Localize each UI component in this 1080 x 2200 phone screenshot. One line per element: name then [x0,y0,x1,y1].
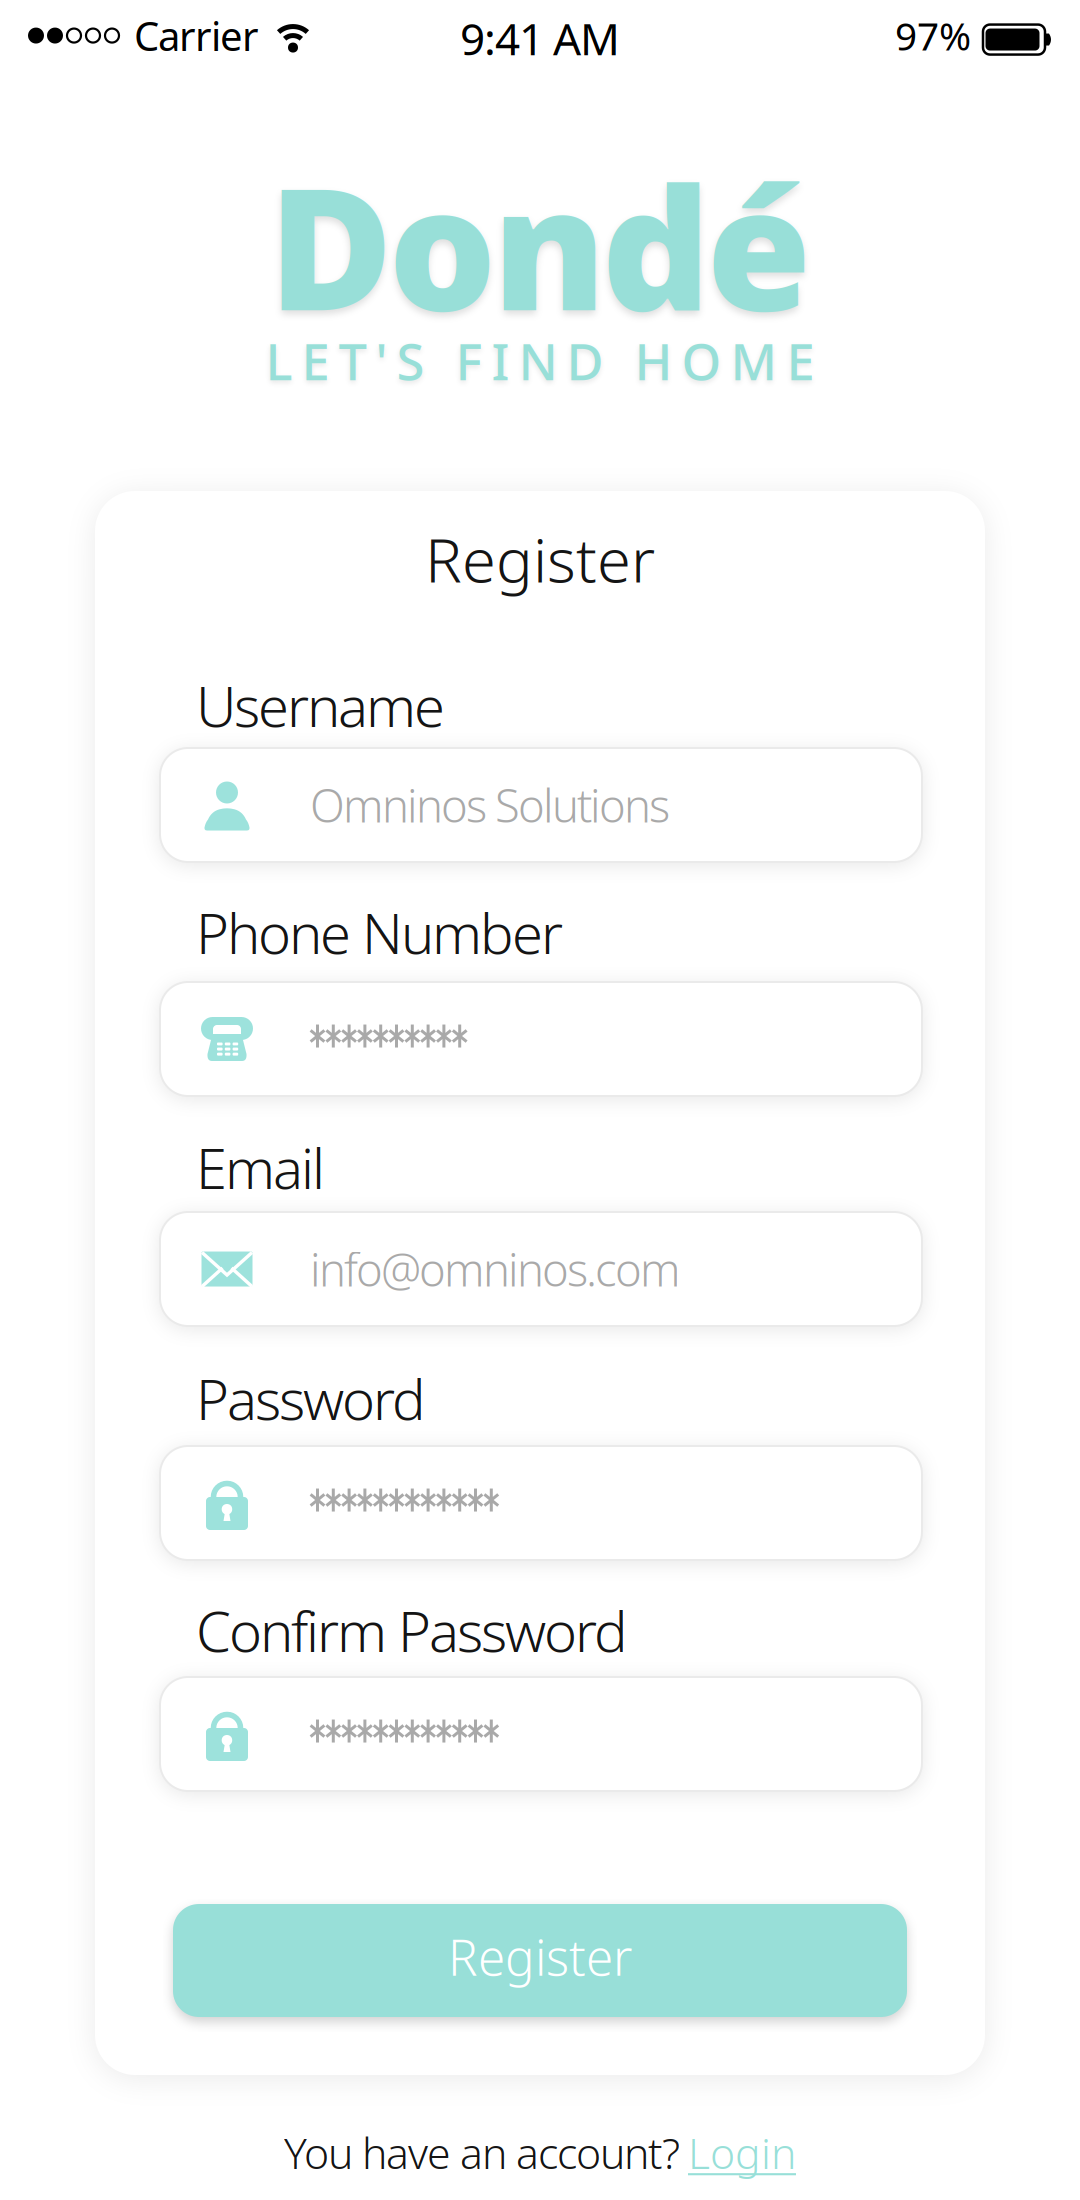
button[interactable]: Email input [160,1212,922,1326]
staticText: info@omninos.com [310,1239,681,1299]
staticText: Omninos Solutions [310,775,670,835]
staticText: Register [448,1924,632,1989]
staticText: Username [196,668,445,742]
staticText: LET'S FIND HOME [265,327,814,394]
button[interactable]: Username input [160,748,922,862]
button[interactable]: Register [173,1904,907,2017]
staticText: Phone Number [196,895,563,969]
staticText: Confirm Password [196,1593,628,1667]
staticText: Login [688,2124,796,2181]
staticText: Dondé [268,132,811,357]
staticText: 9:41 AM [460,9,620,67]
staticText: 97% [895,10,971,61]
button[interactable]: Confirm Password input [160,1677,922,1791]
staticText: Password [196,1361,426,1435]
staticText: Email [196,1130,325,1204]
staticText: You have an account? [284,2124,680,2181]
staticText: Carrier [134,9,259,62]
button[interactable]: Phone Number input [160,982,922,1096]
staticText: Register [425,518,655,599]
button[interactable]: Password input [160,1446,922,1560]
button[interactable]: Login [688,2124,796,2181]
